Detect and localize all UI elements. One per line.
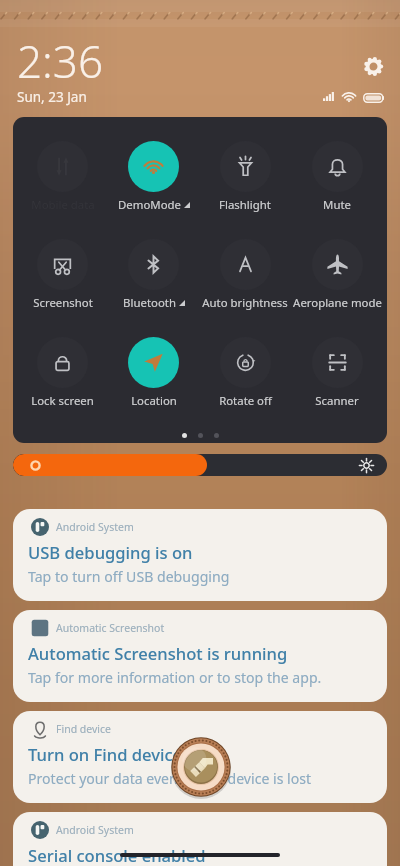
button[interactable]: Auto brightness bbox=[199, 239, 291, 311]
staticText: Android System bbox=[56, 823, 134, 837]
staticText: Lock screen bbox=[31, 393, 94, 409]
staticText: USB debugging is on bbox=[28, 541, 193, 564]
button[interactable]: Bluetooth bbox=[108, 239, 199, 311]
button[interactable]: Brightness bbox=[13, 454, 387, 476]
staticText: Tap to turn off USB debugging bbox=[28, 567, 230, 586]
staticText: Tap for more information or to stop the … bbox=[28, 668, 322, 687]
button[interactable]: Screenshot bbox=[17, 239, 108, 311]
staticText: 2:36 bbox=[17, 31, 104, 91]
button[interactable]: Rotate off bbox=[199, 337, 291, 409]
staticText: Scanner bbox=[315, 393, 359, 409]
button[interactable]: Location bbox=[108, 337, 199, 409]
staticText: Bluetooth bbox=[123, 295, 176, 311]
staticText: Protect your data even if your device is… bbox=[28, 769, 312, 788]
staticText: Aeroplane mode bbox=[293, 295, 382, 311]
staticText: Find device bbox=[56, 722, 112, 736]
button[interactable]: Settings bbox=[364, 57, 383, 76]
staticText: Sun, 23 Jan bbox=[17, 88, 87, 106]
button[interactable]: Android System bbox=[13, 812, 387, 866]
staticText: Mute bbox=[323, 197, 351, 213]
staticText: Serial console enabled bbox=[28, 844, 206, 866]
button[interactable]: Flashlight bbox=[199, 141, 291, 213]
staticText: DemoMode bbox=[118, 197, 181, 213]
staticText: Flashlight bbox=[219, 197, 271, 213]
button[interactable]: Lock screen bbox=[17, 337, 108, 409]
staticText: Rotate off bbox=[219, 393, 272, 409]
staticText: Turn on Find device bbox=[28, 743, 183, 766]
staticText: Auto brightness bbox=[202, 295, 288, 311]
staticText: Screenshot bbox=[33, 295, 93, 311]
staticText: Location bbox=[131, 393, 177, 409]
button[interactable]: Android System bbox=[13, 509, 387, 601]
staticText: Android System bbox=[56, 520, 134, 534]
button[interactable]: Aeroplane mode bbox=[291, 239, 383, 311]
button[interactable]: Theme cleaner bbox=[171, 737, 231, 797]
staticText: Automatic Screenshot is running bbox=[28, 642, 288, 665]
button[interactable]: DemoMode bbox=[108, 141, 199, 213]
button[interactable]: Mute bbox=[291, 141, 383, 213]
button[interactable]: Automatic Screenshot bbox=[13, 610, 387, 702]
button[interactable]: Find device bbox=[13, 711, 387, 803]
staticText: Automatic Screenshot bbox=[56, 621, 165, 635]
button[interactable]: Scanner bbox=[291, 337, 383, 409]
